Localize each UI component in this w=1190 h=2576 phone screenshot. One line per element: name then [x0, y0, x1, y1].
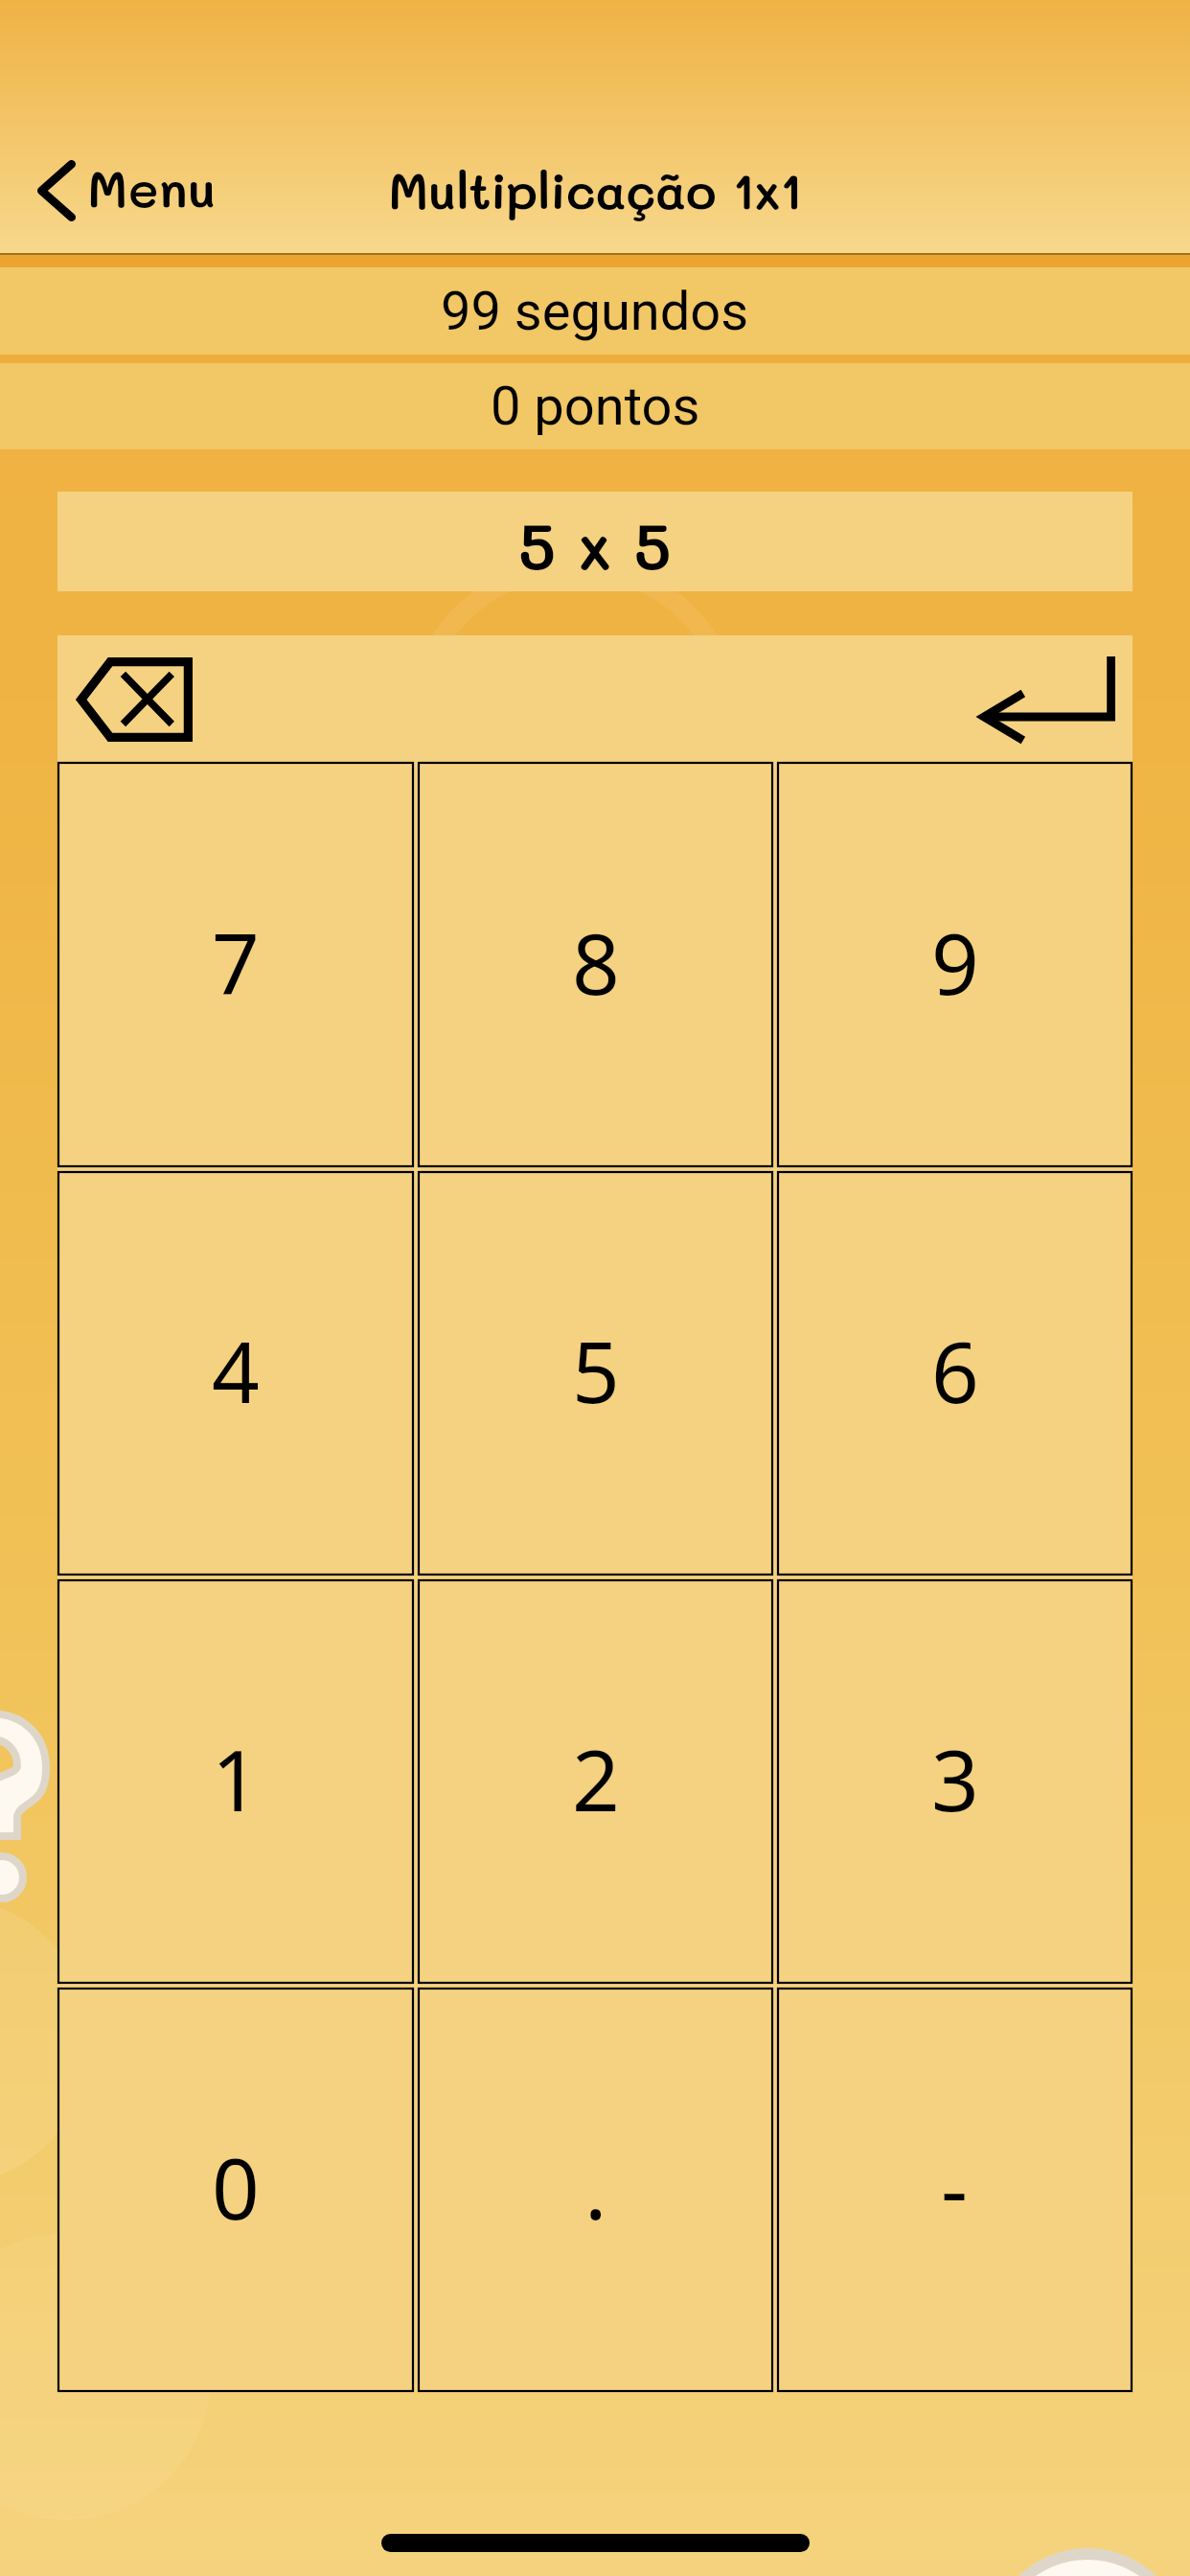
staticText: 2 [572, 1722, 620, 1835]
staticText: 8 [572, 906, 620, 1019]
staticText: 3 [931, 1722, 979, 1835]
staticText: - [941, 2130, 969, 2243]
button[interactable]: 1 [57, 1579, 414, 1984]
button[interactable]: - [777, 1988, 1133, 2392]
button[interactable]: Confirmar [980, 656, 1115, 741]
button[interactable]: 6 [777, 1171, 1133, 1575]
button[interactable]: 9 [777, 762, 1133, 1167]
staticText: 6 [931, 1314, 979, 1427]
staticText: 5 x 5 [518, 503, 672, 586]
button[interactable]: 5 x 5 [57, 492, 1133, 591]
staticText: Multiplicação 1x1 [388, 156, 802, 222]
button[interactable]: 3 [777, 1579, 1133, 1984]
button[interactable]: 2 [418, 1579, 773, 1984]
staticText: 0 pontos [491, 375, 700, 438]
staticText: 9 [931, 906, 979, 1019]
button[interactable]: 7 [57, 762, 414, 1167]
button[interactable]: 8 [418, 762, 773, 1167]
staticText: Menu [87, 154, 217, 220]
button[interactable]: . [418, 1988, 773, 2392]
staticText: 99 segundos [441, 280, 749, 343]
staticText: 7 [212, 906, 260, 1019]
staticText: 0 [212, 2130, 260, 2243]
button[interactable]: 4 [57, 1171, 414, 1575]
staticText: . [584, 2130, 607, 2243]
button[interactable]: 5 [418, 1171, 773, 1575]
staticText: 5 [572, 1314, 620, 1427]
button[interactable]: Menu [0, 149, 226, 226]
button[interactable]: Apagar [76, 657, 193, 742]
staticText: 4 [212, 1314, 260, 1427]
staticText: 1 [212, 1722, 260, 1835]
button[interactable]: 0 [57, 1988, 414, 2392]
